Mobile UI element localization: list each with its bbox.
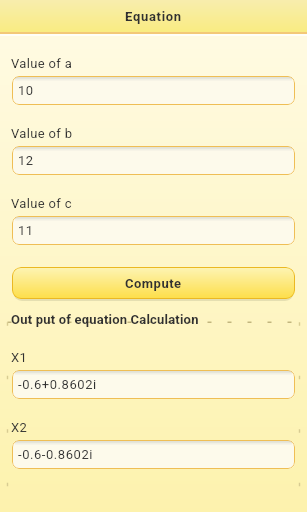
- button[interactable]: Compute: [12, 267, 295, 299]
- button[interactable]: 12: [12, 146, 295, 175]
- staticText: 11: [18, 223, 34, 238]
- staticText: 12: [18, 153, 34, 168]
- button[interactable]: -0.6-0.8602i: [12, 440, 295, 469]
- button[interactable]: 10: [12, 76, 295, 105]
- staticText: Equation: [125, 9, 182, 24]
- staticText: 10: [18, 83, 34, 98]
- staticText: X2: [11, 420, 28, 435]
- staticText: Value of b: [11, 126, 73, 141]
- staticText: Out put of equation Calculation: [11, 312, 199, 327]
- staticText: -0.6-0.8602i: [18, 447, 93, 462]
- button[interactable]: 11: [12, 216, 295, 245]
- staticText: Compute: [125, 276, 182, 291]
- staticText: Value of c: [11, 196, 72, 211]
- button[interactable]: -0.6+0.8602i: [12, 370, 295, 399]
- staticText: -0.6+0.8602i: [18, 377, 97, 392]
- staticText: X1: [11, 350, 28, 365]
- staticText: Value of a: [11, 56, 73, 71]
